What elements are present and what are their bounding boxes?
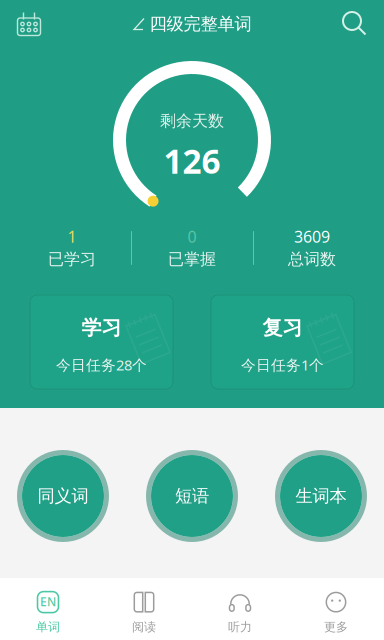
button[interactable]: 短语 — [146, 450, 238, 542]
staticText: 1 — [67, 226, 76, 247]
button[interactable]: 同义词 — [17, 450, 109, 542]
button[interactable]: Search — [342, 11, 368, 37]
staticText: 已掌握 — [168, 249, 216, 269]
button[interactable]: 生词本 — [275, 450, 367, 542]
staticText: 同义词 — [37, 485, 88, 507]
staticText: 今日任务1个 — [241, 355, 324, 374]
button[interactable]: EN — [0, 577, 96, 640]
staticText: 四级完整单词 — [149, 13, 251, 35]
staticText: 复习 — [262, 315, 302, 340]
staticText: 总词数 — [288, 249, 336, 269]
staticText: 今日任务28个 — [56, 355, 147, 374]
button[interactable]: 听力 — [192, 577, 288, 640]
button[interactable]: 学习 — [30, 295, 173, 389]
staticText: 短语 — [175, 485, 209, 507]
button[interactable]: 更多 — [288, 577, 384, 640]
staticText: 学习 — [81, 315, 121, 340]
button[interactable]: 复习 — [211, 295, 354, 389]
staticText: 已学习 — [48, 249, 96, 269]
staticText: 3609 — [294, 226, 330, 247]
staticText: 生词本 — [295, 485, 346, 507]
staticText: 126 — [163, 139, 220, 183]
staticText: 单词 — [36, 620, 60, 634]
staticText: EN — [40, 594, 56, 610]
staticText: 更多 — [324, 620, 348, 634]
staticText: 剩余天数 — [160, 111, 224, 131]
button[interactable]: 阅读 — [96, 577, 192, 640]
staticText: 0 — [187, 226, 196, 247]
staticText: 阅读 — [132, 620, 156, 634]
button[interactable]: Calendar — [16, 11, 42, 37]
staticText: 听力 — [228, 620, 252, 634]
